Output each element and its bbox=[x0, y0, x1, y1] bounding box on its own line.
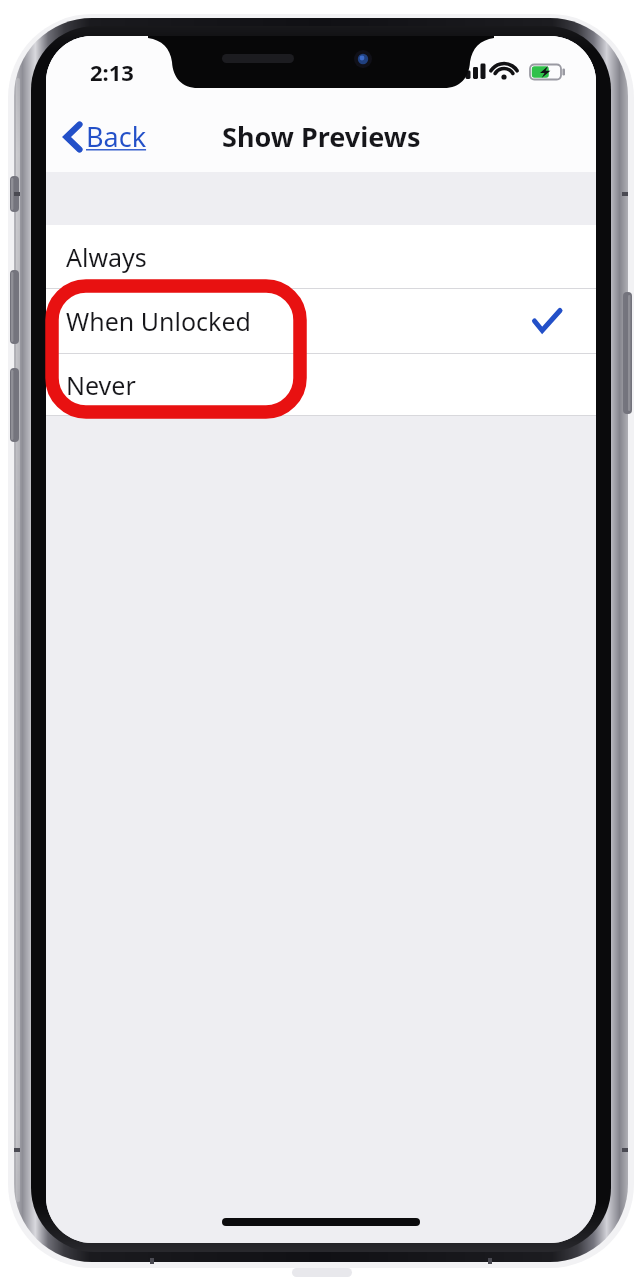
staticText: When Unlocked bbox=[66, 304, 251, 338]
button[interactable]: Never bbox=[46, 354, 596, 415]
staticText: Back bbox=[86, 118, 147, 155]
staticText: Never bbox=[66, 368, 136, 402]
staticText: Always bbox=[66, 240, 147, 274]
staticText: 2:13 bbox=[90, 57, 134, 87]
other: Selected bbox=[532, 308, 562, 334]
staticText: Show Previews bbox=[222, 118, 421, 155]
button[interactable]: Back bbox=[58, 110, 153, 163]
button[interactable]: When Unlocked bbox=[46, 289, 596, 353]
button[interactable]: Always bbox=[46, 225, 596, 288]
